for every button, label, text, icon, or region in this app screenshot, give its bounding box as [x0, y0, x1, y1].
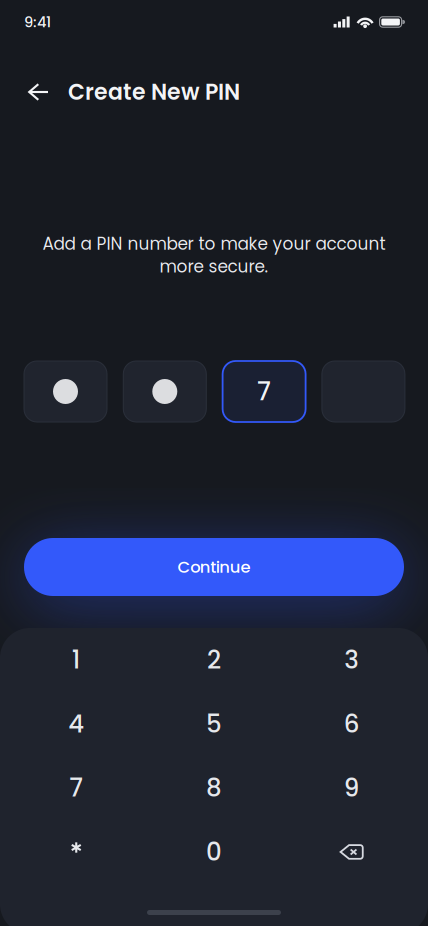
- staticText: 6: [344, 707, 360, 741]
- staticText: Continue: [178, 555, 250, 578]
- button[interactable]: 0: [145, 820, 283, 884]
- staticText: 1: [72, 643, 81, 677]
- button[interactable]: 6: [283, 692, 421, 756]
- button[interactable]: 4: [7, 692, 145, 756]
- staticText: Add a PIN number to make your account: [42, 232, 385, 256]
- staticText: 4: [68, 707, 84, 741]
- button[interactable]: 3: [283, 628, 421, 692]
- staticText: more secure.: [159, 255, 268, 278]
- button[interactable]: [283, 820, 421, 884]
- staticText: 5: [206, 707, 222, 741]
- staticText: 8: [206, 771, 222, 805]
- button[interactable]: 1: [7, 628, 145, 692]
- button[interactable]: Back: [16, 70, 60, 114]
- button[interactable]: 9: [283, 756, 421, 820]
- button[interactable]: 5: [145, 692, 283, 756]
- staticText: 7: [257, 374, 271, 409]
- staticText: 9: [344, 771, 360, 805]
- staticText: 3: [344, 643, 359, 677]
- button[interactable]: Continue: [24, 538, 404, 596]
- staticText: 7: [69, 771, 83, 805]
- button[interactable]: 8: [145, 756, 283, 820]
- staticText: 0: [206, 835, 222, 869]
- button[interactable]: 2: [145, 628, 283, 692]
- staticText: 2: [207, 643, 221, 677]
- staticText: 9:41: [24, 12, 51, 32]
- staticText: Create New PIN: [68, 77, 240, 107]
- button[interactable]: 7: [7, 756, 145, 820]
- button[interactable]: [7, 820, 145, 884]
